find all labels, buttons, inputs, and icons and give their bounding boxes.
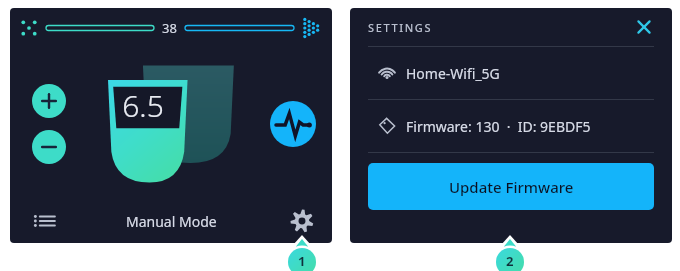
button[interactable]: Home-Wifi_5G [368,47,654,99]
button[interactable]: Monitor [270,101,316,147]
button[interactable]: Increase [32,84,66,118]
staticText: Home-Wifi_5G [406,64,500,83]
staticText: 1 [298,252,306,270]
button[interactable]: Menu [32,208,58,234]
button[interactable]: Settings [290,209,314,233]
button[interactable]: Firmware: 130 · ID: 9EBDF5 [368,100,654,152]
button[interactable]: Decrease [32,130,66,164]
staticText: 6.5 [122,85,164,126]
staticText: Manual Mode [126,212,217,231]
button[interactable]: Close [634,17,654,37]
staticText: Firmware: 130 · ID: 9EBDF5 [406,117,591,136]
staticText: 2 [506,252,514,270]
staticText: 38 [162,19,177,37]
button[interactable]: Update Firmware [368,163,654,210]
staticText: SETTINGS [368,20,433,35]
staticText: Update Firmware [449,177,574,197]
